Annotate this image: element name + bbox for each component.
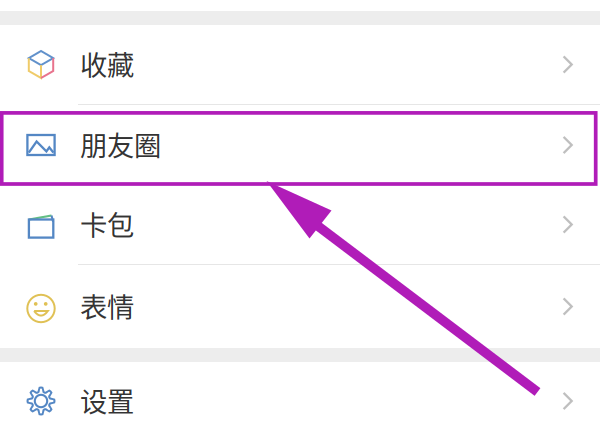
staticText: 表情 [80,286,134,325]
staticText: 收藏 [80,44,134,83]
button[interactable]: 卡包 [0,185,600,264]
staticText: 设置 [80,380,134,420]
staticText: 卡包 [80,204,134,243]
button[interactable]: 收藏 [0,25,600,104]
button[interactable]: 设置 [0,362,600,421]
button[interactable]: 朋友圈 [0,105,600,185]
staticText: 朋友圈 [80,124,161,164]
button[interactable]: 表情 [0,265,600,348]
